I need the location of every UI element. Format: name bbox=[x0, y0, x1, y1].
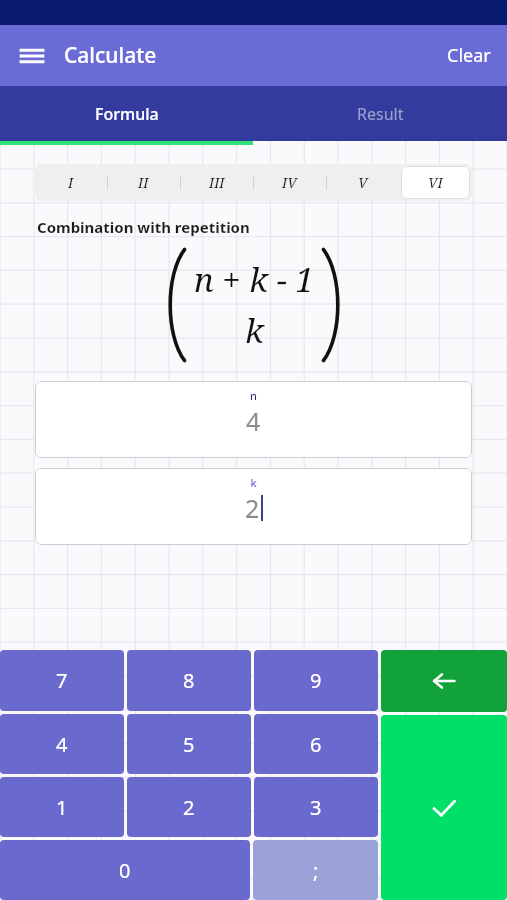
staticText: III bbox=[209, 173, 225, 192]
staticText: k bbox=[250, 475, 257, 490]
staticText: 8 bbox=[183, 667, 195, 694]
button[interactable]: 0 bbox=[0, 840, 250, 900]
staticText: Clear bbox=[447, 43, 491, 68]
staticText: IV bbox=[282, 173, 297, 192]
staticText: I bbox=[68, 173, 74, 192]
staticText: 3 bbox=[310, 794, 322, 821]
staticText: 2 bbox=[245, 491, 260, 525]
button[interactable]: 7 bbox=[0, 650, 124, 711]
staticText: ; bbox=[313, 857, 319, 884]
button[interactable]: II bbox=[107, 164, 180, 201]
button[interactable]: IV bbox=[253, 164, 326, 201]
staticText: 4 bbox=[56, 731, 68, 758]
staticText: 0 bbox=[119, 857, 131, 884]
button[interactable]: VI bbox=[399, 164, 472, 201]
button[interactable]: 1 bbox=[0, 777, 124, 837]
staticText: V bbox=[358, 173, 368, 192]
button[interactable]: Backspace bbox=[381, 650, 507, 712]
button[interactable]: I bbox=[35, 164, 107, 201]
button[interactable]: Clear bbox=[431, 33, 507, 78]
button[interactable]: V bbox=[326, 164, 399, 201]
staticText: 9 bbox=[310, 667, 322, 694]
staticText: 7 bbox=[56, 667, 68, 694]
button[interactable]: 3 bbox=[254, 777, 378, 837]
staticText: n + k − 1 bbox=[194, 257, 314, 302]
button[interactable]: 5 bbox=[127, 714, 251, 774]
button[interactable]: III bbox=[180, 164, 253, 201]
staticText: 5 bbox=[183, 731, 195, 758]
staticText: VI bbox=[428, 173, 443, 192]
staticText: 6 bbox=[310, 731, 322, 758]
staticText: II bbox=[138, 173, 149, 192]
button[interactable]: 2 bbox=[127, 777, 251, 837]
button[interactable]: 6 bbox=[254, 714, 378, 774]
staticText: Calculate bbox=[64, 41, 157, 70]
button[interactable]: ; bbox=[253, 840, 378, 900]
button[interactable]: 4 bbox=[0, 714, 124, 774]
staticText: n bbox=[250, 388, 257, 403]
button[interactable]: Result bbox=[253, 86, 507, 141]
staticText: 4 bbox=[246, 404, 261, 438]
button[interactable]: 9 bbox=[254, 650, 378, 711]
staticText: k bbox=[245, 308, 264, 353]
button[interactable]: k bbox=[35, 468, 472, 545]
button[interactable]: Open navigation menu bbox=[10, 34, 54, 78]
staticText: 1 bbox=[56, 794, 68, 821]
staticText: Formula bbox=[95, 103, 159, 125]
staticText: 2 bbox=[183, 794, 195, 821]
button[interactable]: Formula bbox=[0, 86, 253, 141]
button[interactable]: n bbox=[35, 381, 472, 458]
button[interactable]: Confirm bbox=[381, 715, 507, 900]
staticText: Combination with repetition bbox=[37, 217, 250, 237]
button[interactable]: 8 bbox=[127, 650, 251, 711]
staticText: Result bbox=[357, 103, 404, 125]
